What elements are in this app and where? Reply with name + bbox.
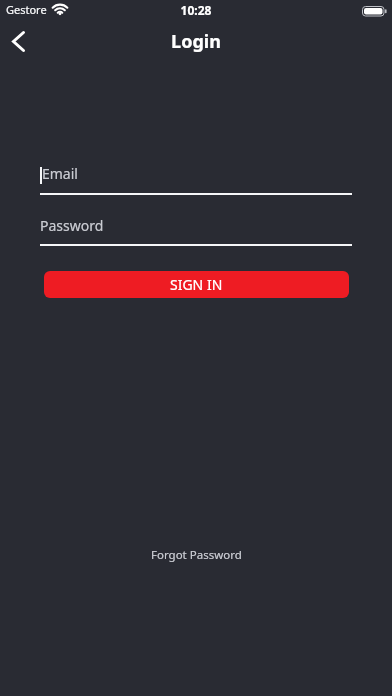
button[interactable] xyxy=(40,161,352,195)
staticText: 10:28 xyxy=(0,2,392,18)
button[interactable] xyxy=(0,28,36,54)
staticText: SIGN IN xyxy=(170,275,223,294)
staticText: Forgot Password xyxy=(151,547,242,563)
button[interactable] xyxy=(40,212,352,245)
staticText: Gestore xyxy=(6,2,47,17)
staticText: Password xyxy=(40,216,104,235)
staticText: Login xyxy=(0,29,392,54)
staticText: Email xyxy=(42,164,78,183)
button[interactable]: SIGN IN xyxy=(44,271,349,298)
button[interactable]: Forgot Password xyxy=(145,545,248,565)
